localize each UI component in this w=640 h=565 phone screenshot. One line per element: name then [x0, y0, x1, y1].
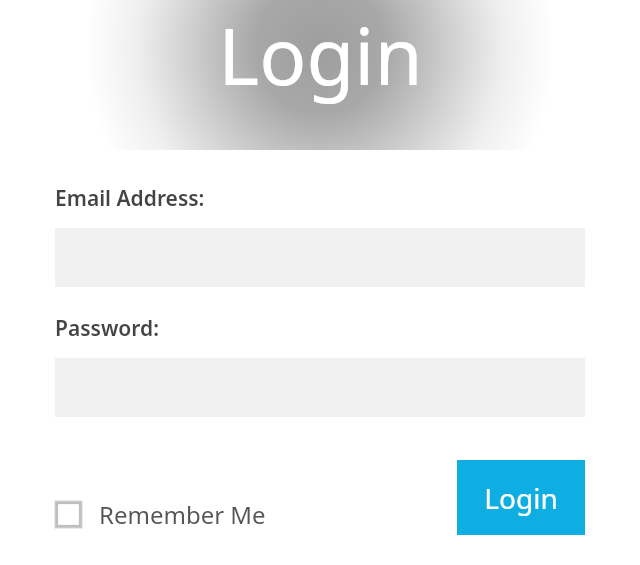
- staticText: Email Address:: [55, 184, 205, 213]
- button[interactable]: Remember Me: [55, 498, 266, 531]
- button[interactable]: Login: [457, 460, 585, 535]
- staticText: Login: [484, 479, 558, 517]
- staticText: Password:: [55, 314, 159, 343]
- staticText: Login: [218, 2, 423, 108]
- staticText: Remember Me: [99, 498, 266, 531]
